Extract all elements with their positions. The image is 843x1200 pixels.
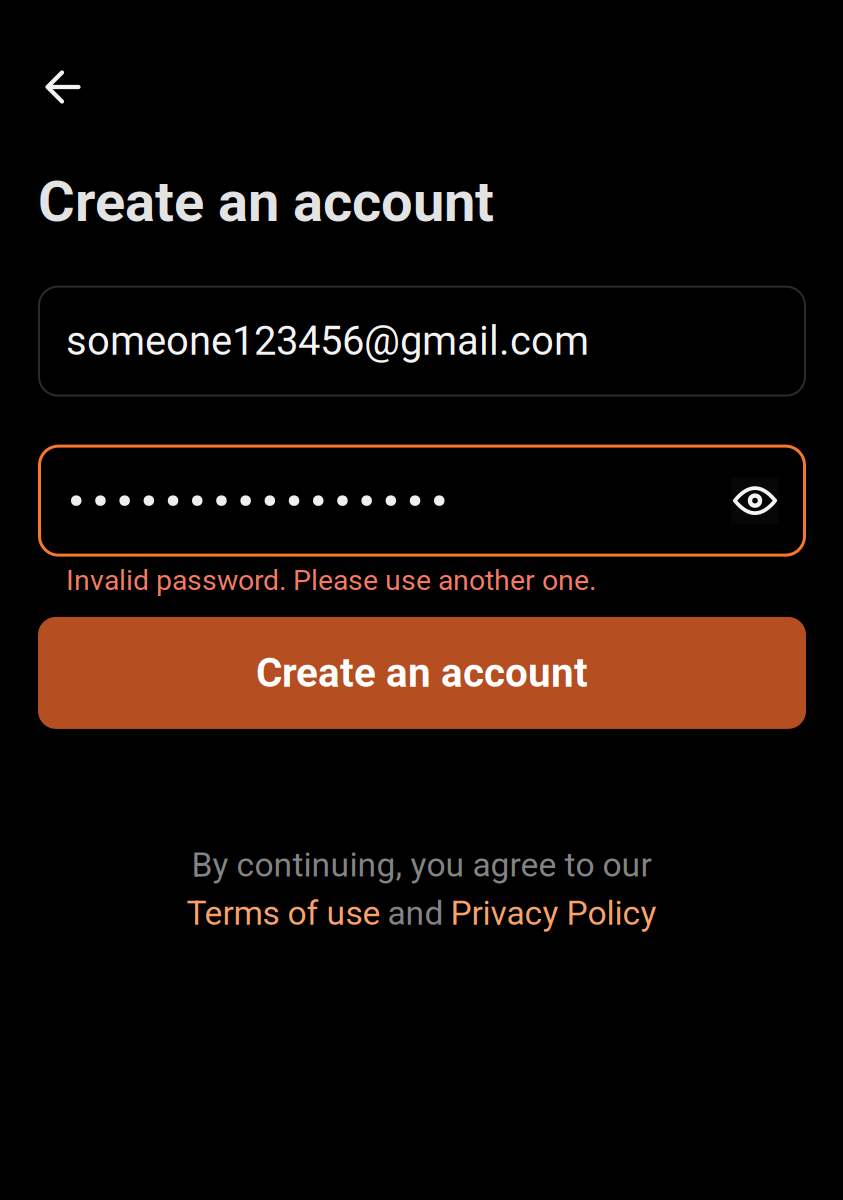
staticText: someone123456@gmail.com xyxy=(66,318,589,365)
staticText: Privacy Policy xyxy=(450,894,656,933)
button[interactable]: Password xyxy=(71,445,724,557)
staticText: By continuing, you agree to our xyxy=(191,845,651,885)
button[interactable]: Back xyxy=(28,55,98,119)
button[interactable]: Create an account xyxy=(38,617,806,729)
staticText: and xyxy=(387,894,443,933)
button[interactable]: someone123456@gmail.com xyxy=(38,286,806,397)
staticText: Terms of use xyxy=(186,894,380,933)
staticText: Invalid password. Please use another one… xyxy=(66,564,596,597)
button[interactable]: Terms of use xyxy=(186,894,380,933)
button[interactable]: Privacy Policy xyxy=(450,894,656,933)
button[interactable]: Show password xyxy=(724,470,786,532)
staticText: Create an account xyxy=(38,169,494,235)
staticText: Create an account xyxy=(256,649,588,696)
